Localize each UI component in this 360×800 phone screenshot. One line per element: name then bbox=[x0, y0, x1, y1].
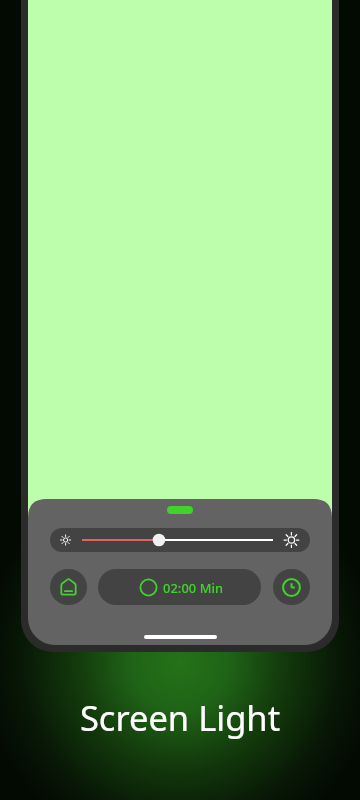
button[interactable]: Timer bbox=[273, 569, 310, 605]
staticText: Screen Light bbox=[0, 694, 360, 741]
button[interactable]: 02:00 Min bbox=[98, 569, 261, 605]
staticText: 02:00 Min bbox=[163, 579, 224, 596]
button[interactable]: Home bbox=[50, 569, 87, 605]
button[interactable]: Brightness bbox=[50, 528, 310, 552]
